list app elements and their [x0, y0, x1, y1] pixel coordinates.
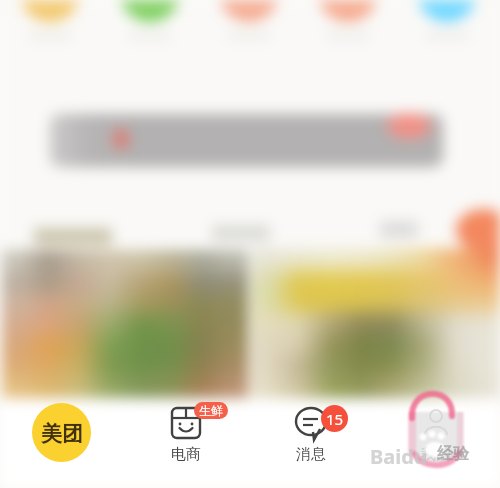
staticText: Baidu	[370, 443, 427, 470]
button[interactable]: 美团	[32, 403, 91, 462]
staticText: 经验	[437, 444, 469, 464]
button[interactable]: 我的	[402, 402, 470, 464]
staticText: 消息	[296, 445, 326, 464]
button[interactable]: 电商	[152, 402, 220, 464]
staticText: 美团	[41, 421, 83, 447]
staticText: 15	[326, 409, 344, 429]
staticText: 我的	[421, 445, 451, 464]
staticText: 电商	[171, 445, 201, 464]
button[interactable]: 消息	[277, 402, 345, 464]
staticText: 生鲜	[199, 403, 223, 418]
